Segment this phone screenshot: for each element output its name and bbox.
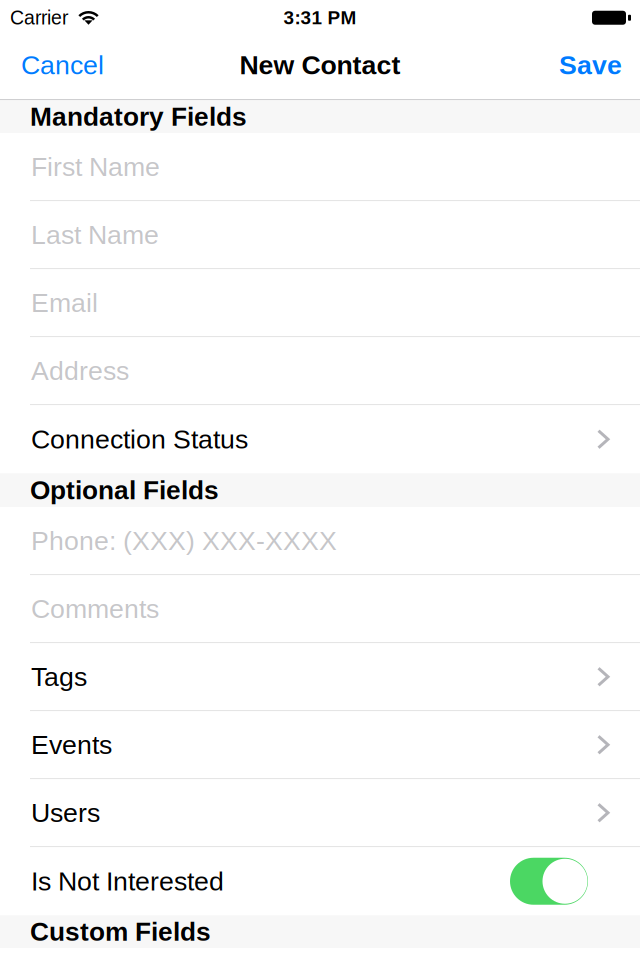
button[interactable]: Comments — [0, 575, 640, 642]
button[interactable]: Tags — [0, 643, 640, 710]
staticText: Mandatory Fields — [30, 102, 247, 131]
button[interactable]: Email — [0, 269, 640, 336]
staticText: Comments — [31, 594, 159, 624]
staticText: Phone: (XXX) XXX-XXXX — [31, 526, 337, 556]
button[interactable]: Last Name — [0, 201, 640, 268]
staticText: First Name — [31, 152, 160, 182]
staticText: New Contact — [239, 50, 400, 80]
button[interactable]: Is Not Interested toggle — [510, 858, 588, 905]
staticText: Is Not Interested — [31, 866, 224, 896]
staticText: Users — [31, 798, 100, 828]
staticText: Optional Fields — [30, 476, 219, 505]
staticText: Cancel — [21, 50, 104, 80]
staticText: Tags — [31, 662, 87, 692]
staticText: 3:31 PM — [283, 7, 356, 28]
staticText: Custom Fields — [30, 917, 211, 946]
staticText: Connection Status — [31, 424, 248, 454]
staticText: Last Name — [31, 220, 159, 250]
button[interactable]: Address — [0, 337, 640, 404]
button[interactable]: Events — [0, 711, 640, 778]
button[interactable]: Phone: (XXX) XXX-XXXX — [0, 507, 640, 574]
button[interactable]: Connection Status — [0, 405, 640, 473]
button[interactable]: Cancel — [0, 38, 128, 92]
button[interactable]: Is Not Interested — [0, 847, 640, 915]
staticText: Carrier — [10, 7, 68, 29]
staticText: Address — [31, 356, 129, 386]
button[interactable]: First Name — [0, 133, 640, 200]
staticText: Email — [31, 288, 98, 318]
staticText: Events — [31, 730, 112, 760]
button[interactable]: Users — [0, 779, 640, 846]
button[interactable]: Save — [535, 38, 640, 92]
staticText: Save — [559, 50, 622, 80]
